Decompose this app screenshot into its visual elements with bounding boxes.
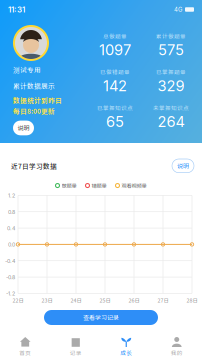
staticText: -1.2 <box>6 290 15 297</box>
staticText: 说明 <box>177 161 189 170</box>
staticText: 未掌握知识点 <box>153 104 189 112</box>
staticText: 26日 <box>128 296 139 304</box>
staticText: 我的 <box>171 349 183 357</box>
staticText: 每日8:00更新 <box>13 106 55 116</box>
staticText: 65 <box>106 113 124 130</box>
staticText: 24日 <box>70 296 81 304</box>
button[interactable]: 我的 <box>151 336 202 357</box>
button[interactable]: 首页 <box>0 336 50 357</box>
staticText: 264 <box>157 113 184 130</box>
staticText: 错题量 <box>91 182 106 189</box>
staticText: 1.2 <box>8 192 15 199</box>
staticText: 累计数据展示 <box>13 81 55 90</box>
staticText: 已掌握题量 <box>156 68 186 76</box>
staticText: 28日 <box>186 296 197 304</box>
staticText: -0.4 <box>5 258 15 264</box>
button[interactable]: 说明 <box>13 121 34 135</box>
staticText: 累计做题量 <box>156 32 186 40</box>
staticText: 25日 <box>99 296 110 304</box>
staticText: 27日 <box>157 296 168 304</box>
staticText: 已做错题量 <box>100 68 130 76</box>
staticText: 总做题量 <box>103 32 127 40</box>
staticText: 0.0 <box>8 241 15 248</box>
staticText: 11:31 <box>8 5 25 14</box>
staticText: 数据统计到昨日 <box>13 95 62 105</box>
staticText: 做题量 <box>61 182 76 189</box>
staticText: 测试专用 <box>13 65 41 75</box>
staticText: 23日 <box>41 296 52 304</box>
staticText: 4G <box>174 6 182 13</box>
staticText: 0.4 <box>7 225 15 232</box>
staticText: 说明 <box>17 124 29 132</box>
staticText: 查看学习记录 <box>83 313 119 322</box>
staticText: 22日 <box>12 296 23 304</box>
staticText: 0.8 <box>8 209 15 215</box>
button[interactable]: 查看学习记录 <box>44 310 158 325</box>
button[interactable]: 记录 <box>50 336 101 357</box>
staticText: 记录 <box>70 349 82 357</box>
staticText: 329 <box>157 77 184 95</box>
staticText: 近7日学习数据 <box>11 161 57 171</box>
staticText: 成长 <box>120 349 132 357</box>
staticText: 观看视频量 <box>121 182 146 189</box>
button[interactable]: 说明 <box>172 159 194 173</box>
staticText: -0.8 <box>6 274 15 281</box>
staticText: 1097 <box>99 41 131 59</box>
staticText: 首页 <box>19 349 31 357</box>
staticText: 575 <box>158 41 184 59</box>
staticText: 已掌握知识点 <box>97 104 133 112</box>
button[interactable]: 成长 <box>101 336 151 357</box>
staticText: 142 <box>103 77 127 95</box>
